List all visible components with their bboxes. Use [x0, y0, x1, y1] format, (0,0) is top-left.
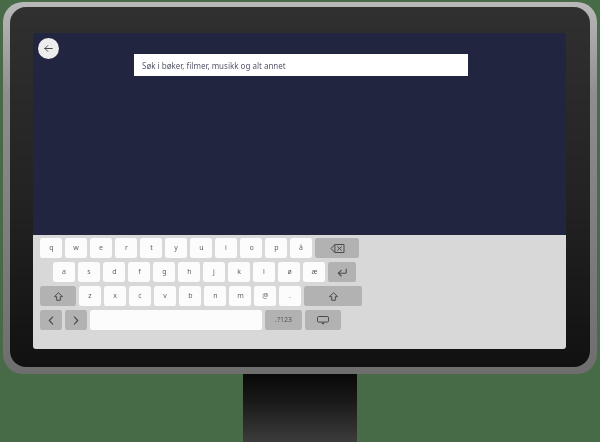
staticText: @ — [262, 291, 269, 301]
button[interactable]: c — [129, 286, 151, 306]
button[interactable]: h — [178, 262, 200, 282]
staticText: w — [73, 243, 79, 253]
button[interactable]: p — [265, 238, 287, 258]
button[interactable]: i — [215, 238, 237, 258]
button[interactable]: Back — [38, 38, 59, 59]
button[interactable]: y — [165, 238, 187, 258]
button[interactable]: Shift — [304, 286, 362, 306]
staticText: v — [163, 291, 167, 301]
staticText: r — [125, 243, 128, 253]
button[interactable]: g — [153, 262, 175, 282]
button[interactable]: d — [103, 262, 125, 282]
staticText: m — [237, 291, 244, 301]
staticText: s — [87, 267, 91, 277]
staticText: d — [112, 267, 117, 277]
button[interactable]: Previous — [40, 310, 62, 330]
staticText: a — [62, 267, 66, 277]
staticText: p — [274, 243, 279, 253]
staticText: t — [150, 243, 153, 253]
button[interactable]: n — [204, 286, 226, 306]
button[interactable]: w — [65, 238, 87, 258]
staticText: n — [213, 291, 218, 301]
button[interactable]: q — [40, 238, 62, 258]
staticText: j — [213, 267, 215, 277]
staticText: i — [225, 243, 227, 253]
button[interactable]: e — [90, 238, 112, 258]
button[interactable]: ø — [278, 262, 300, 282]
button[interactable]: . — [279, 286, 301, 306]
button[interactable]: j — [203, 262, 225, 282]
staticText: l — [263, 267, 265, 277]
button[interactable]: v — [154, 286, 176, 306]
staticText: . — [289, 291, 291, 301]
staticText: g — [162, 267, 167, 277]
staticText: c — [138, 291, 142, 301]
button[interactable]: m — [229, 286, 251, 306]
button[interactable]: Shift — [40, 286, 76, 306]
staticText: q — [49, 243, 54, 253]
button[interactable]: @ — [254, 286, 276, 306]
button[interactable]: l — [253, 262, 275, 282]
button[interactable]: t — [140, 238, 162, 258]
staticText: f — [138, 267, 141, 277]
staticText: ø — [287, 267, 292, 277]
button[interactable]: z — [79, 286, 101, 306]
button[interactable]: u — [190, 238, 212, 258]
staticText: Søk i bøker, filmer, musikk og alt annet — [142, 60, 286, 71]
staticText: k — [237, 267, 241, 277]
button[interactable]: Backspace — [315, 238, 359, 258]
button[interactable]: b — [179, 286, 201, 306]
staticText: å — [299, 243, 303, 253]
staticText: x — [113, 291, 117, 301]
button[interactable]: f — [128, 262, 150, 282]
button[interactable]: Enter — [328, 262, 356, 282]
button[interactable]: o — [240, 238, 262, 258]
staticText: b — [188, 291, 193, 301]
button[interactable]: a — [53, 262, 75, 282]
staticText: o — [249, 243, 254, 253]
button[interactable]: k — [228, 262, 250, 282]
button[interactable]: x — [104, 286, 126, 306]
staticText: æ — [311, 267, 318, 277]
staticText: .?123 — [275, 315, 292, 325]
staticText: z — [88, 291, 92, 301]
staticText: y — [174, 243, 178, 253]
button[interactable]: r — [115, 238, 137, 258]
button[interactable]: Søk i bøker, filmer, musikk og alt annet — [134, 54, 468, 76]
staticText: h — [187, 267, 192, 277]
button[interactable]: Hide keyboard — [305, 310, 341, 330]
staticText: e — [99, 243, 103, 253]
button[interactable]: æ — [303, 262, 325, 282]
button[interactable]: Next — [65, 310, 87, 330]
button[interactable]: s — [78, 262, 100, 282]
staticText: u — [199, 243, 204, 253]
button[interactable]: .?123 — [265, 310, 302, 330]
button[interactable]: å — [290, 238, 312, 258]
